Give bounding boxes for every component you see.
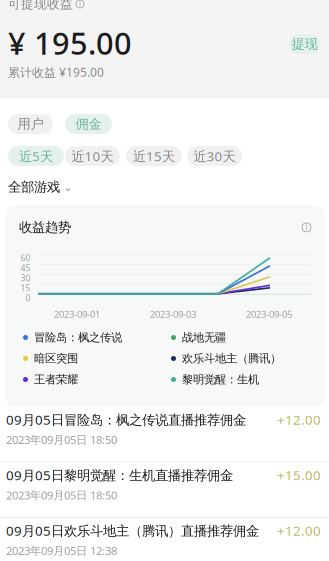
staticText: 用户 — [17, 116, 43, 132]
button[interactable]: 说明 — [302, 223, 311, 232]
staticText: 2023-09-03 — [150, 308, 196, 320]
staticText: 09月05日黎明觉醒：生机直播推荐佣金 — [6, 466, 233, 484]
staticText: 09月05日欢乐斗地主（腾讯）直播推荐佣金 — [6, 521, 259, 540]
staticText: +12.00 — [277, 410, 321, 429]
staticText: 15 — [20, 282, 30, 294]
button[interactable]: 近10天 — [65, 146, 120, 166]
staticText: 王者荣耀 — [34, 372, 78, 387]
button[interactable]: 佣金 — [65, 114, 112, 134]
staticText: 0 — [25, 292, 30, 304]
staticText: ⌄ — [63, 180, 73, 194]
button[interactable]: 近15天 — [126, 146, 182, 166]
staticText: 欢乐斗地主（腾讯） — [182, 351, 281, 366]
staticText: 2023年09月05日 18:50 — [6, 487, 117, 503]
staticText: 2023-09-05 — [246, 308, 292, 320]
staticText: 收益趋势 — [19, 219, 71, 236]
staticText: 45 — [20, 262, 30, 274]
staticText: 全部游戏 — [8, 179, 60, 195]
staticText: +12.00 — [277, 521, 321, 540]
staticText: 60 — [20, 252, 30, 264]
staticText: 暗区突围 — [34, 351, 78, 366]
staticText: 战地无疆 — [182, 330, 226, 345]
staticText: +15.00 — [277, 466, 321, 484]
staticText: 可提现收益 — [8, 0, 73, 12]
staticText: 累计收益 ¥195.00 — [8, 64, 104, 80]
button[interactable]: 全部游戏 — [8, 181, 321, 193]
button[interactable]: 09月05日黎明觉醒：生机直播推荐佣金 — [0, 462, 329, 518]
staticText: 近5天 — [19, 147, 53, 165]
staticText: 提现 — [291, 36, 317, 52]
staticText: 黎明觉醒：生机 — [182, 372, 259, 387]
button[interactable]: 用户 — [8, 114, 53, 134]
button[interactable]: 近30天 — [187, 146, 242, 166]
staticText: i — [79, 0, 81, 9]
staticText: i — [305, 222, 307, 233]
button[interactable]: 近5天 — [8, 146, 64, 166]
button[interactable]: 提现 — [289, 34, 320, 54]
button[interactable]: 09月05日冒险岛：枫之传说直播推荐佣金 — [0, 407, 329, 462]
staticText: 2023年09月05日 18:50 — [6, 432, 117, 447]
staticText: 30 — [20, 272, 30, 284]
staticText: 佣金 — [75, 116, 101, 132]
staticText: 近10天 — [71, 147, 113, 165]
button[interactable]: 09月05日欢乐斗地主（腾讯）直播推荐佣金 — [0, 518, 329, 561]
staticText: 09月05日冒险岛：枫之传说直播推荐佣金 — [6, 410, 246, 429]
staticText: 近30天 — [193, 147, 235, 165]
staticText: 近15天 — [133, 147, 175, 165]
staticText: ¥ 195.00 — [8, 22, 132, 64]
staticText: 2023年09月05日 12:38 — [6, 543, 117, 558]
staticText: 2023-09-01 — [54, 308, 100, 320]
staticText: 冒险岛：枫之传说 — [34, 330, 122, 345]
